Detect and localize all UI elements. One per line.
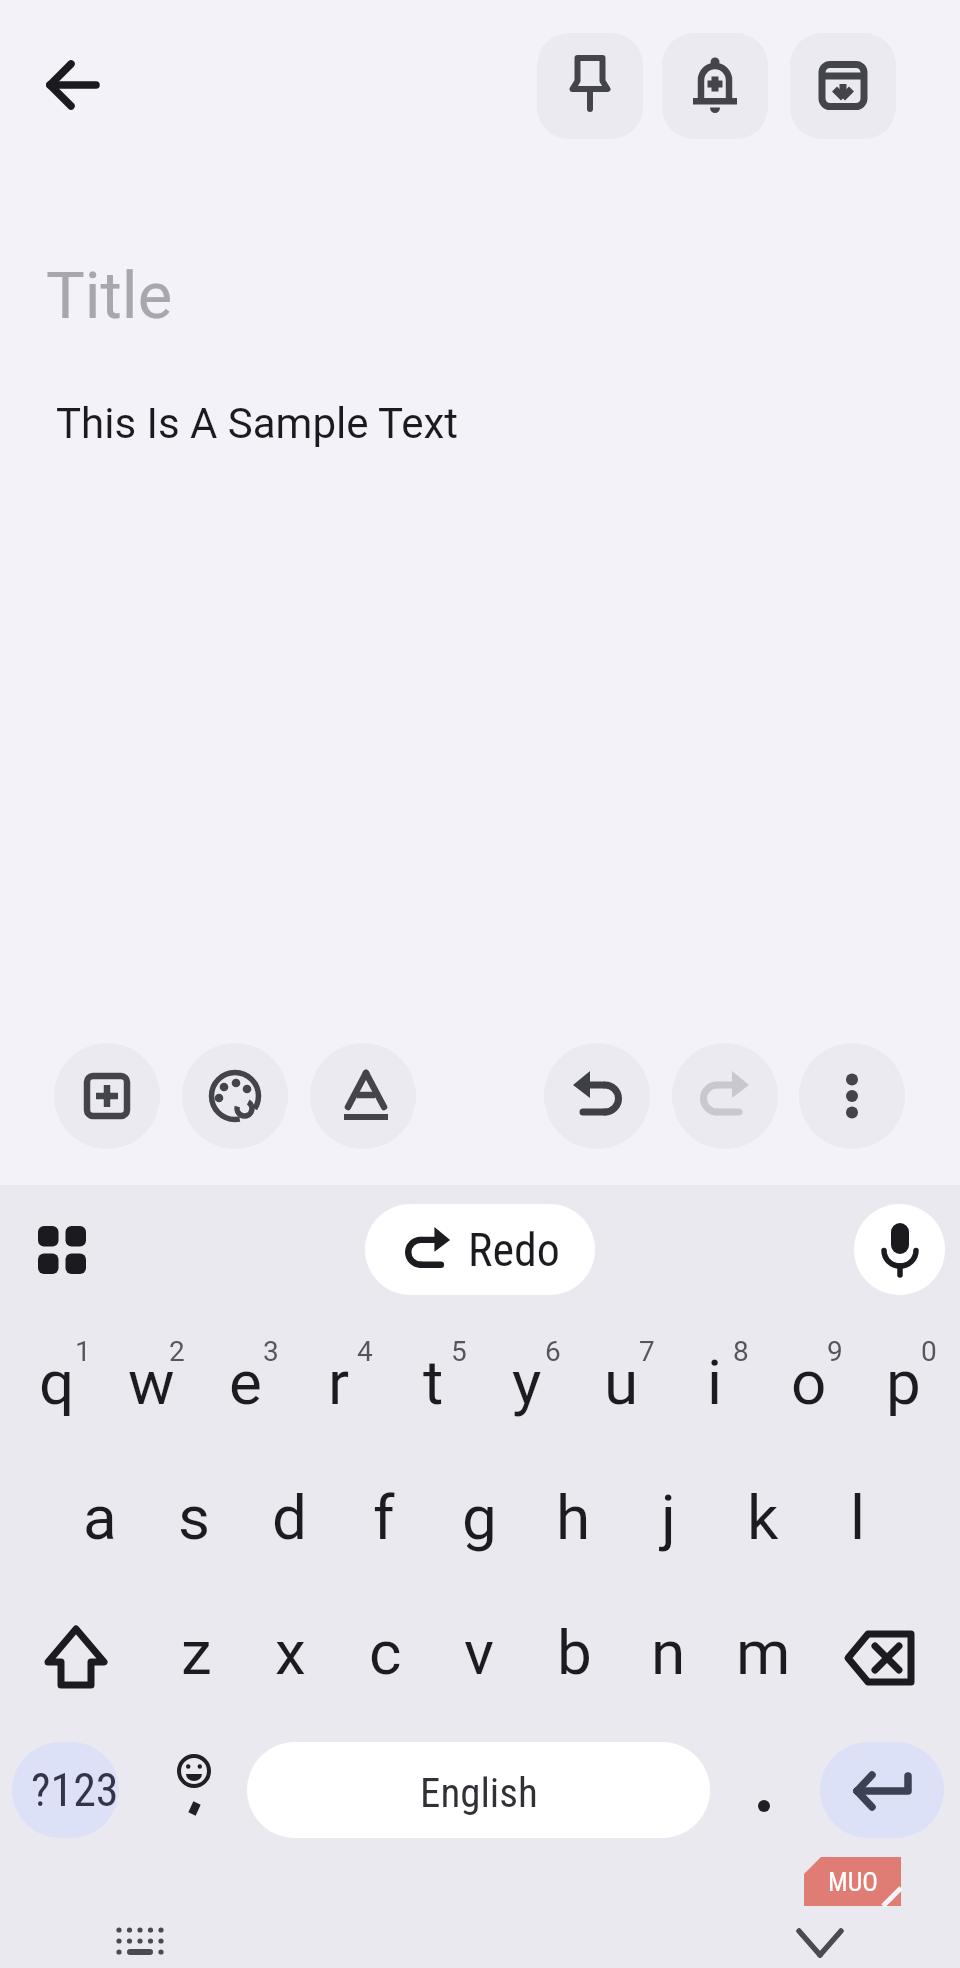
button[interactable]: o	[745, 1318, 873, 1446]
button[interactable]: w	[87, 1318, 215, 1446]
button[interactable]: ?123	[12, 1742, 119, 1838]
button[interactable]: Redo	[365, 1204, 595, 1295]
staticText: c	[369, 1616, 402, 1689]
button[interactable]	[799, 1043, 905, 1149]
button[interactable]: q	[0, 1318, 121, 1446]
staticText: Title	[46, 258, 173, 334]
button[interactable]	[790, 33, 896, 139]
button[interactable]	[54, 1043, 160, 1149]
staticText: d	[272, 1481, 307, 1554]
button[interactable]	[30, 53, 116, 119]
staticText: b	[557, 1616, 592, 1689]
button[interactable]: l	[794, 1453, 922, 1581]
staticText: h	[556, 1481, 591, 1554]
button[interactable]: English	[247, 1742, 710, 1838]
button[interactable]: b	[510, 1588, 638, 1716]
button[interactable]: y	[463, 1318, 591, 1446]
staticText: 0	[921, 1335, 937, 1368]
staticText: 3	[263, 1335, 279, 1368]
button[interactable]	[662, 33, 768, 139]
staticText: s	[178, 1481, 210, 1554]
button[interactable]: v	[415, 1588, 543, 1716]
button[interactable]	[672, 1043, 778, 1149]
button[interactable]: g	[415, 1453, 543, 1581]
staticText: m	[736, 1616, 791, 1689]
button[interactable]: f	[320, 1453, 448, 1581]
button[interactable]	[30, 1218, 94, 1282]
staticText: z	[181, 1616, 212, 1689]
staticText: k	[747, 1481, 779, 1554]
staticText: e	[229, 1346, 262, 1419]
staticText: o	[791, 1346, 827, 1419]
button[interactable]: z	[132, 1588, 260, 1716]
staticText: a	[83, 1481, 117, 1554]
button[interactable]: s	[130, 1453, 258, 1581]
button[interactable]: u	[557, 1318, 685, 1446]
staticText: Redo	[468, 1223, 560, 1277]
button[interactable]: i	[651, 1318, 779, 1446]
staticText: 6	[545, 1335, 561, 1368]
button[interactable]: p	[839, 1318, 960, 1446]
button[interactable]	[310, 1043, 416, 1149]
button[interactable]	[785, 1918, 855, 1968]
button[interactable]: h	[509, 1453, 637, 1581]
staticText: n	[651, 1616, 686, 1689]
button[interactable]: c	[321, 1588, 449, 1716]
staticText: i	[707, 1346, 723, 1419]
staticText: 5	[451, 1335, 467, 1368]
button[interactable]: x	[226, 1588, 354, 1716]
staticText: This Is A Sample Text	[56, 399, 458, 448]
staticText: y	[512, 1346, 542, 1419]
button[interactable]: d	[225, 1453, 353, 1581]
staticText: MUO	[828, 1867, 878, 1897]
button[interactable]	[148, 1742, 240, 1838]
button[interactable]	[834, 1607, 928, 1707]
button[interactable]: r	[275, 1318, 403, 1446]
staticText: English	[420, 1769, 538, 1817]
staticText: 7	[639, 1335, 655, 1368]
staticText: j	[661, 1481, 676, 1554]
staticText: g	[462, 1481, 497, 1554]
button[interactable]	[182, 1043, 288, 1149]
button[interactable]	[100, 1915, 180, 1968]
button[interactable]: a	[36, 1453, 164, 1581]
staticText: 4	[357, 1335, 373, 1368]
button[interactable]	[854, 1204, 945, 1295]
staticText: w	[128, 1346, 175, 1419]
staticText: ?123	[31, 1763, 119, 1817]
staticText: p	[886, 1346, 921, 1419]
button[interactable]: n	[604, 1588, 732, 1716]
staticText: u	[604, 1346, 639, 1419]
staticText: 9	[827, 1335, 843, 1368]
button[interactable]	[722, 1742, 806, 1838]
staticText: q	[39, 1346, 75, 1419]
button[interactable]	[30, 1607, 124, 1707]
button[interactable]: m	[699, 1588, 827, 1716]
button[interactable]	[820, 1742, 944, 1838]
staticText: x	[275, 1616, 306, 1689]
button[interactable]: t	[369, 1318, 497, 1446]
button[interactable]: e	[181, 1318, 309, 1446]
staticText: l	[850, 1481, 866, 1554]
staticText: f	[373, 1481, 395, 1554]
staticText: v	[464, 1616, 495, 1689]
staticText: 8	[733, 1335, 749, 1368]
staticText: t	[423, 1346, 444, 1419]
button[interactable]	[537, 33, 643, 139]
staticText: r	[328, 1346, 350, 1419]
staticText: 2	[169, 1335, 185, 1368]
button[interactable]: k	[699, 1453, 827, 1581]
button[interactable]	[544, 1043, 650, 1149]
staticText: 1	[75, 1335, 91, 1368]
button[interactable]: j	[604, 1453, 732, 1581]
